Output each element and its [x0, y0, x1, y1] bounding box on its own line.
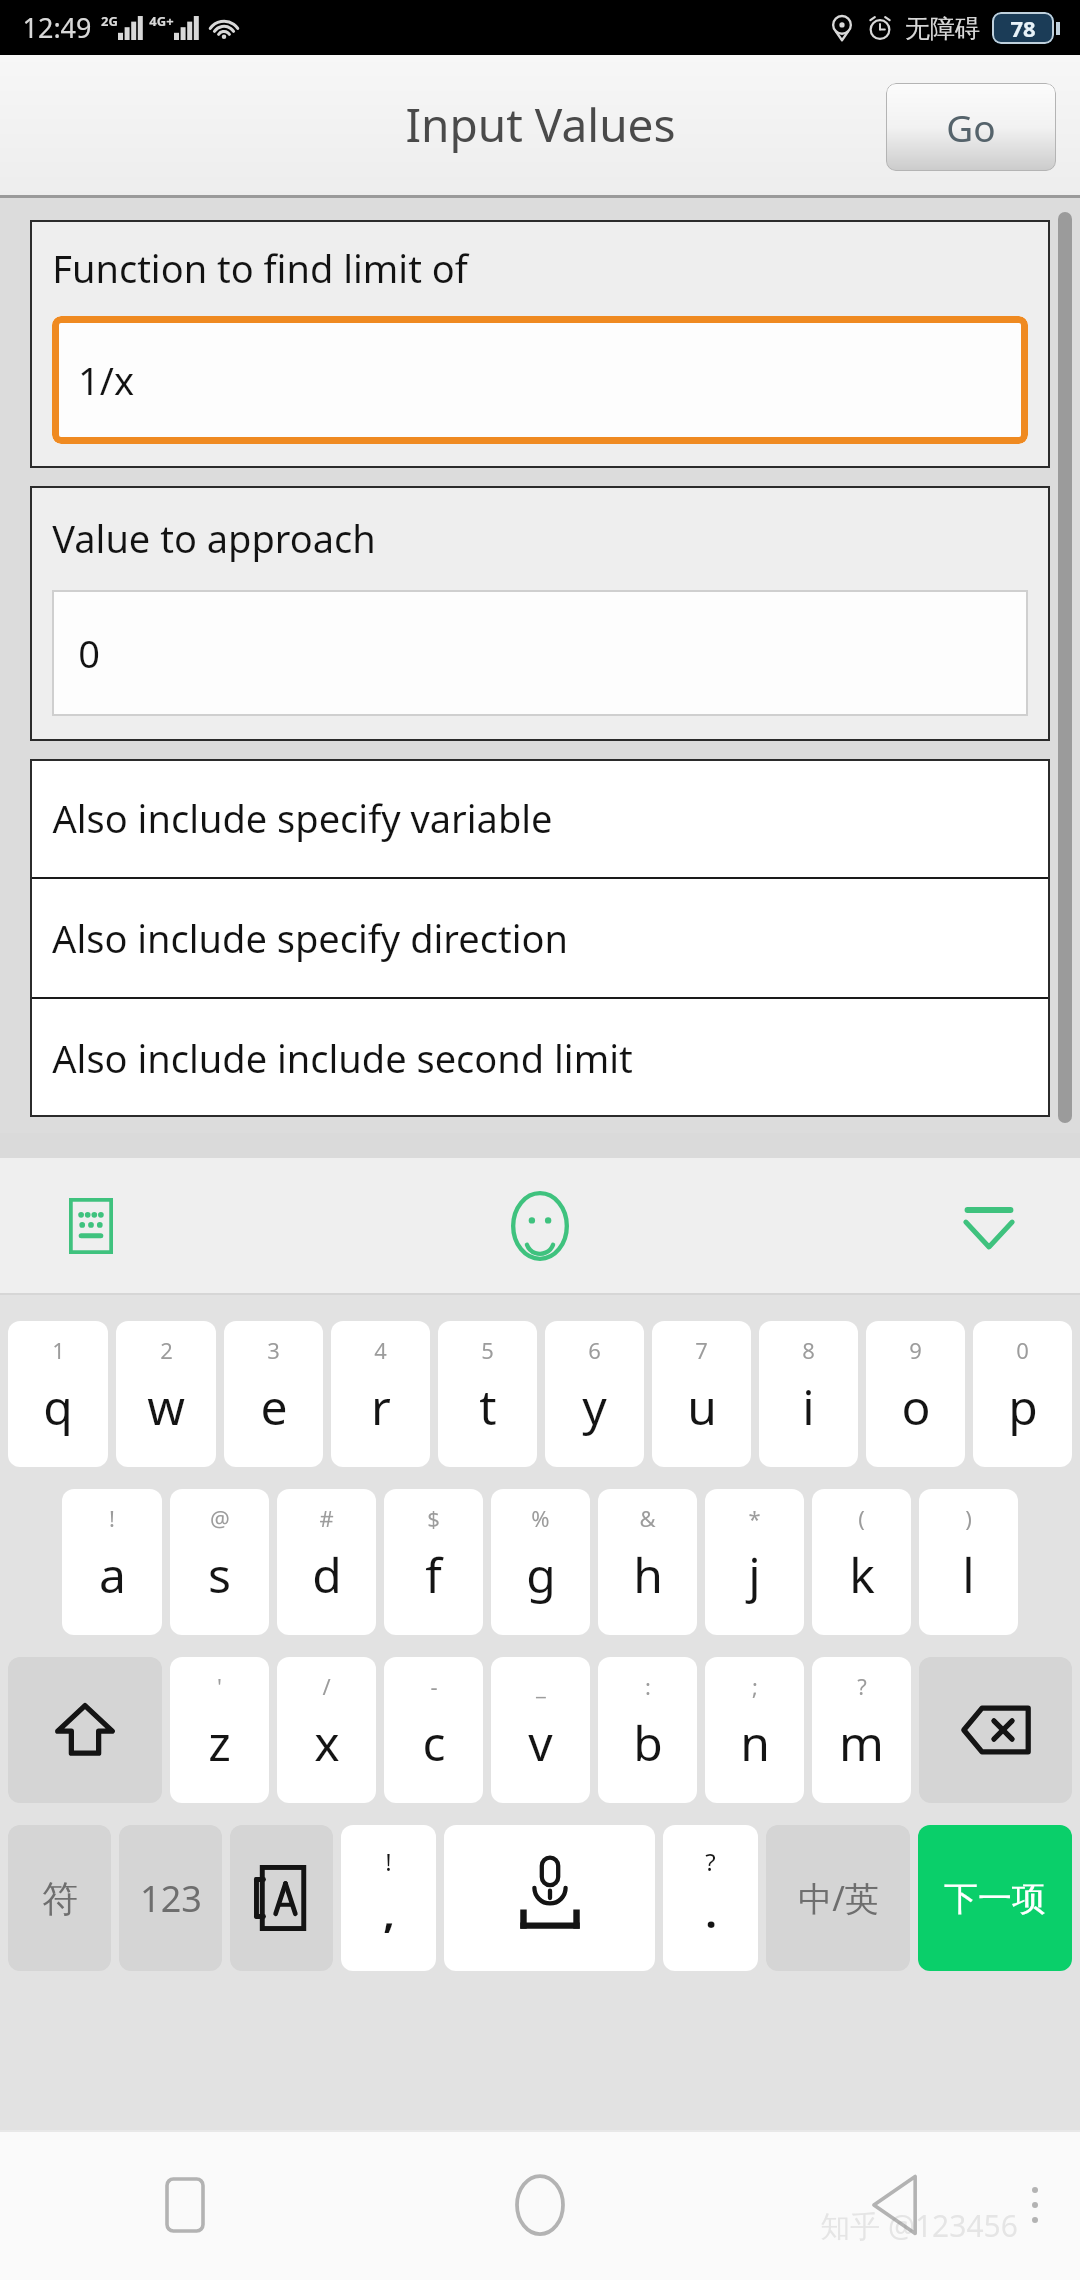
button[interactable]: 符	[8, 1825, 111, 1971]
staticText: 无障碍	[905, 13, 980, 44]
button[interactable]: Space, voice input	[444, 1825, 655, 1971]
staticText: r	[371, 1374, 391, 1439]
button[interactable]: Also include specify variable	[30, 759, 1050, 877]
button[interactable]: 0	[973, 1321, 1072, 1467]
staticText: 2	[160, 1335, 173, 1365]
other: Location	[829, 15, 855, 41]
button[interactable]: Also include specify direction	[30, 879, 1050, 997]
staticText: 知乎 @123456	[820, 2205, 1018, 2246]
button[interactable]: Keyboard layout	[48, 1183, 134, 1269]
button[interactable]: 3	[224, 1321, 323, 1467]
staticText: z	[208, 1710, 231, 1775]
staticText: 0	[78, 627, 100, 679]
staticText: 123	[140, 1874, 202, 1923]
button[interactable]: ?	[663, 1825, 758, 1971]
button[interactable]: !	[62, 1489, 162, 1635]
button[interactable]: Shift	[8, 1657, 162, 1803]
button[interactable]: -	[384, 1657, 483, 1803]
staticText: Also include specify variable	[52, 792, 553, 844]
button[interactable]: 2	[116, 1321, 216, 1467]
button[interactable]: 1	[8, 1321, 108, 1467]
staticText: @	[210, 1503, 230, 1533]
staticText: 4G+	[149, 12, 174, 30]
staticText: k	[849, 1542, 875, 1607]
button[interactable]: 6	[545, 1321, 644, 1467]
staticText: 5	[481, 1335, 494, 1365]
staticText: Function to find limit of	[52, 242, 468, 294]
staticText: 2G	[101, 12, 118, 30]
staticText: Input Values	[405, 93, 676, 156]
staticText: q	[43, 1374, 73, 1439]
staticText: :	[645, 1671, 651, 1701]
staticText: w	[147, 1374, 185, 1439]
button[interactable]: 123	[119, 1825, 222, 1971]
button[interactable]: 中/英	[766, 1825, 910, 1971]
staticText: o	[901, 1374, 931, 1439]
button[interactable]: 9	[866, 1321, 965, 1467]
button[interactable]: /	[277, 1657, 376, 1803]
button[interactable]: _	[491, 1657, 590, 1803]
staticText: ,	[383, 1885, 395, 1939]
button[interactable]: Go	[886, 83, 1056, 171]
button[interactable]: )	[919, 1489, 1018, 1635]
staticText: c	[422, 1710, 446, 1775]
button[interactable]: *	[705, 1489, 804, 1635]
staticText: (	[858, 1503, 865, 1533]
staticText: 1	[52, 1335, 65, 1365]
button[interactable]: 4	[331, 1321, 430, 1467]
staticText: #	[319, 1503, 334, 1533]
staticText: ?	[857, 1671, 867, 1701]
staticText: 下一项	[944, 1877, 1046, 1920]
button[interactable]: 下一项	[918, 1825, 1072, 1971]
staticText: d	[312, 1542, 342, 1607]
staticText: i	[802, 1374, 815, 1439]
staticText: 3	[267, 1335, 280, 1365]
staticText: Also include specify direction	[52, 912, 568, 964]
button[interactable]: Also include include second limit	[30, 999, 1050, 1117]
staticText: p	[1008, 1374, 1038, 1439]
staticText: Also include include second limit	[52, 1032, 633, 1084]
button[interactable]: %	[491, 1489, 590, 1635]
button[interactable]: #	[277, 1489, 376, 1635]
staticText: 4	[374, 1335, 387, 1365]
button[interactable]: ?	[812, 1657, 911, 1803]
button[interactable]: (	[812, 1489, 911, 1635]
button[interactable]: !	[341, 1825, 436, 1971]
button[interactable]: $	[384, 1489, 483, 1635]
button[interactable]: 0	[52, 590, 1028, 716]
button[interactable]: Back	[840, 2150, 950, 2260]
button[interactable]: :	[598, 1657, 697, 1803]
staticText: Value to approach	[52, 512, 376, 564]
staticText: b	[633, 1710, 663, 1775]
button[interactable]: @	[170, 1489, 269, 1635]
staticText: s	[208, 1542, 231, 1607]
button[interactable]: Hide keyboard	[946, 1183, 1032, 1269]
button[interactable]: 5	[438, 1321, 537, 1467]
button[interactable]: ;	[705, 1657, 804, 1803]
staticText: 6	[588, 1335, 601, 1365]
button[interactable]: 8	[759, 1321, 858, 1467]
button[interactable]: &	[598, 1489, 697, 1635]
staticText: ?	[705, 1845, 716, 1878]
staticText: u	[687, 1374, 717, 1439]
button[interactable]: Home	[485, 2150, 595, 2260]
button[interactable]: Emoji	[497, 1183, 583, 1269]
staticText: /	[322, 1671, 331, 1701]
button[interactable]: 7	[652, 1321, 751, 1467]
button[interactable]: '	[170, 1657, 269, 1803]
button[interactable]: 1/x	[52, 316, 1028, 444]
staticText: 中/英	[798, 1875, 879, 1921]
staticText: '	[217, 1671, 222, 1701]
staticText: h	[633, 1542, 663, 1607]
staticText: 9	[909, 1335, 922, 1365]
staticText: v	[528, 1710, 553, 1775]
staticText: _	[536, 1671, 546, 1701]
staticText: &	[639, 1503, 656, 1533]
button[interactable]: Recents	[130, 2150, 240, 2260]
staticText: %	[531, 1503, 550, 1533]
button[interactable]: Backspace	[919, 1657, 1072, 1803]
staticText: 7	[695, 1335, 708, 1365]
staticText: 78	[1010, 13, 1036, 43]
button[interactable]: Change language	[230, 1825, 333, 1971]
staticText: ;	[752, 1671, 758, 1701]
